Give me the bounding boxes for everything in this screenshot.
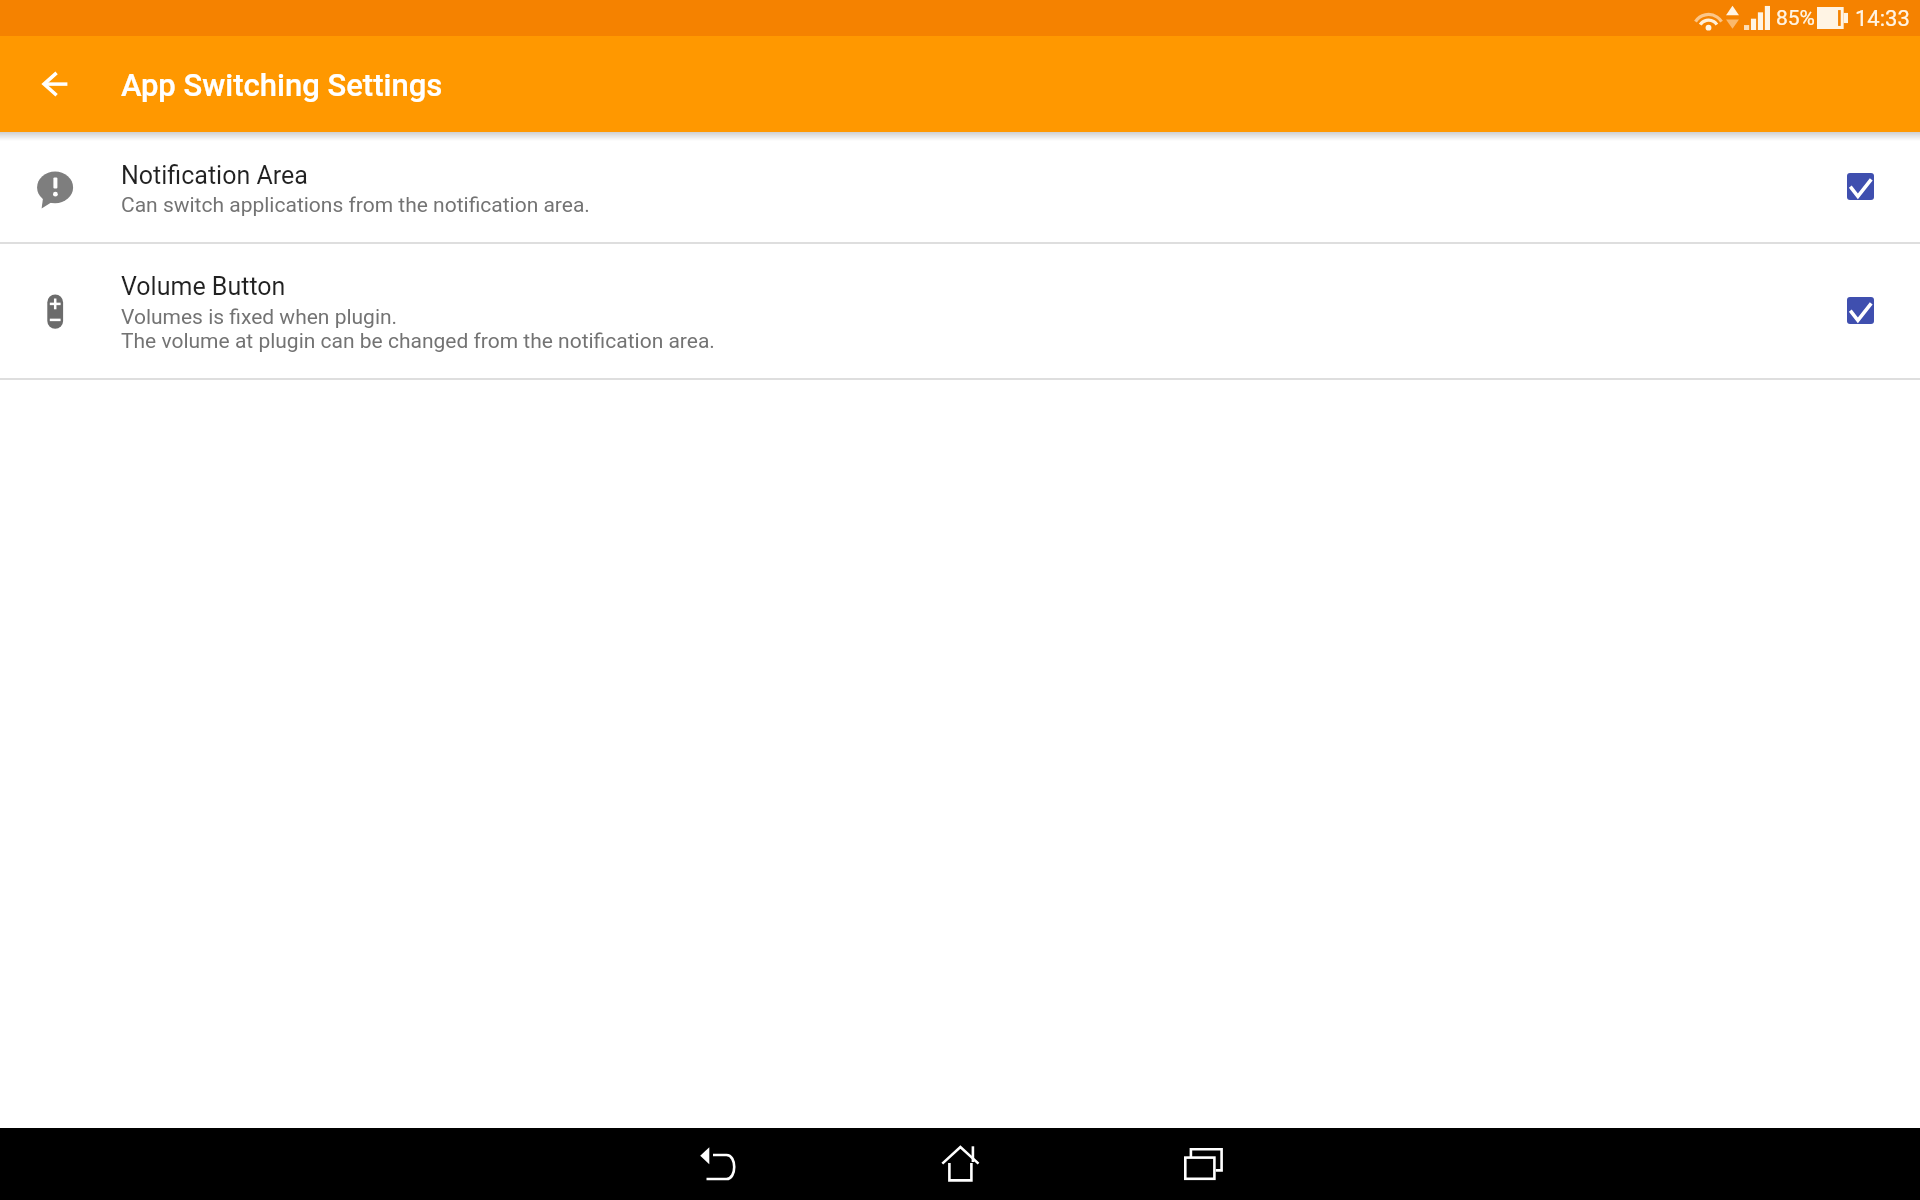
button[interactable]: Back xyxy=(694,1140,742,1188)
button[interactable]: Navigate up xyxy=(30,60,78,108)
staticText: The volume at plugin can be changed from… xyxy=(121,329,715,354)
button[interactable]: Recent apps xyxy=(1178,1140,1226,1188)
button[interactable]: Home xyxy=(936,1140,984,1188)
staticText: Can switch applications from the notific… xyxy=(121,193,590,218)
staticText: Volumes is fixed when plugin. xyxy=(121,305,398,330)
button[interactable]: Volume Button xyxy=(0,244,1920,379)
staticText: Volume Button xyxy=(121,272,286,301)
staticText: 85% xyxy=(1776,6,1815,31)
staticText: Notification Area xyxy=(121,161,308,190)
staticText: 14:33 xyxy=(1855,6,1910,32)
button[interactable]: Notification Area xyxy=(0,132,1920,243)
staticText: App Switching Settings xyxy=(121,67,443,103)
button[interactable]: Toggle Notification Area xyxy=(1836,162,1884,210)
button[interactable]: Toggle Volume Button xyxy=(1836,286,1884,334)
